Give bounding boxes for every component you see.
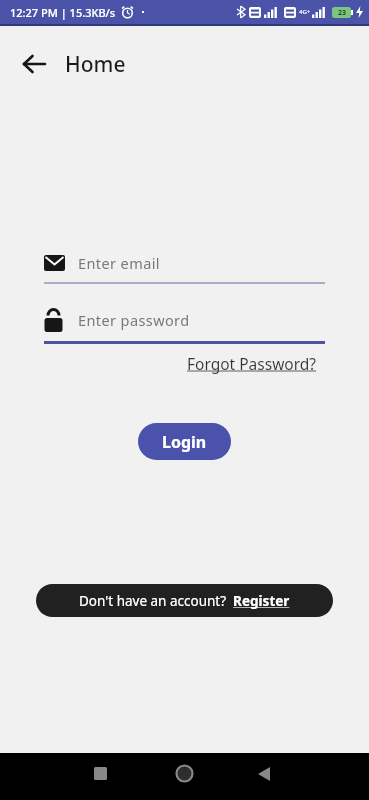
staticText: Home [65,50,126,79]
button[interactable]: Don't have an account? Register [36,584,333,617]
staticText: 4G+ [299,8,311,16]
staticText: Don't have an account? Register [79,592,290,610]
button[interactable] [258,767,270,781]
button[interactable] [22,54,47,74]
button[interactable]: Enter password [44,308,325,344]
button[interactable] [175,764,194,783]
button[interactable] [94,767,107,780]
staticText: Enter password [78,310,190,330]
staticText: Enter email [78,253,160,273]
staticText: Login [162,431,207,453]
button[interactable]: Enter email [44,253,325,284]
button[interactable]: Forgot Password? [187,353,317,374]
staticText: 23 [338,8,347,18]
button[interactable]: Login [138,423,231,460]
staticText: 12:27 PM | 15.3KB/s [10,5,116,20]
